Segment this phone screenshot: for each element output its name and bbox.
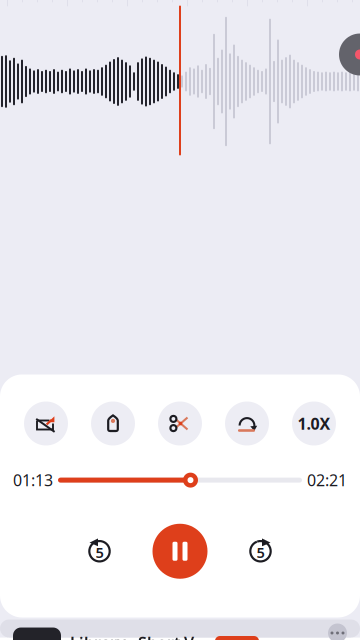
button[interactable]: Share <box>24 401 68 445</box>
button[interactable]: Loop <box>225 401 269 445</box>
button[interactable]: More options <box>328 623 347 640</box>
button[interactable]: Tag <box>91 401 135 445</box>
staticText: 02:21 <box>307 469 347 491</box>
staticText: 5 <box>95 542 103 562</box>
button[interactable]: 1.0X <box>292 401 336 445</box>
staticText: Library · Short V… <box>70 632 206 640</box>
button[interactable]: Forward 5 seconds <box>238 529 282 573</box>
button[interactable]: Back 5 seconds <box>77 529 121 573</box>
button[interactable]: Trim <box>158 401 202 445</box>
staticText: 5 <box>256 542 264 562</box>
button[interactable]: Seek <box>58 472 302 488</box>
button[interactable]: Pause <box>152 524 207 579</box>
staticText: 01:13 <box>13 469 53 491</box>
button[interactable]: Record <box>339 33 360 75</box>
staticText: 1.0X <box>297 413 330 434</box>
